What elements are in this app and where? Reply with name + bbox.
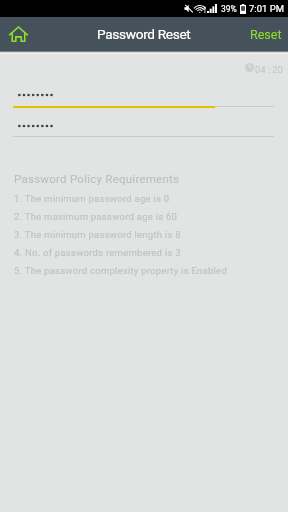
button[interactable]: Home [5,21,31,47]
button[interactable]: Reset [240,21,288,48]
staticText: Password Policy Requirements [14,172,180,185]
staticText: 4. No. of passwords remembered is 3 [14,247,181,258]
staticText: 2. The maximum password age is 60 [14,211,178,222]
staticText: Reset [250,27,282,42]
staticText: 39% [221,4,237,14]
staticText: 7:01 PM [249,3,284,14]
staticText: 1. The minimum password age is 0 [14,193,170,204]
staticText: 04 : 20 [255,64,283,75]
staticText: 5. The password complexity property is E… [14,265,227,276]
staticText: 3. The minimum password length is 8 [14,229,181,240]
staticText: Password Reset [97,26,191,42]
